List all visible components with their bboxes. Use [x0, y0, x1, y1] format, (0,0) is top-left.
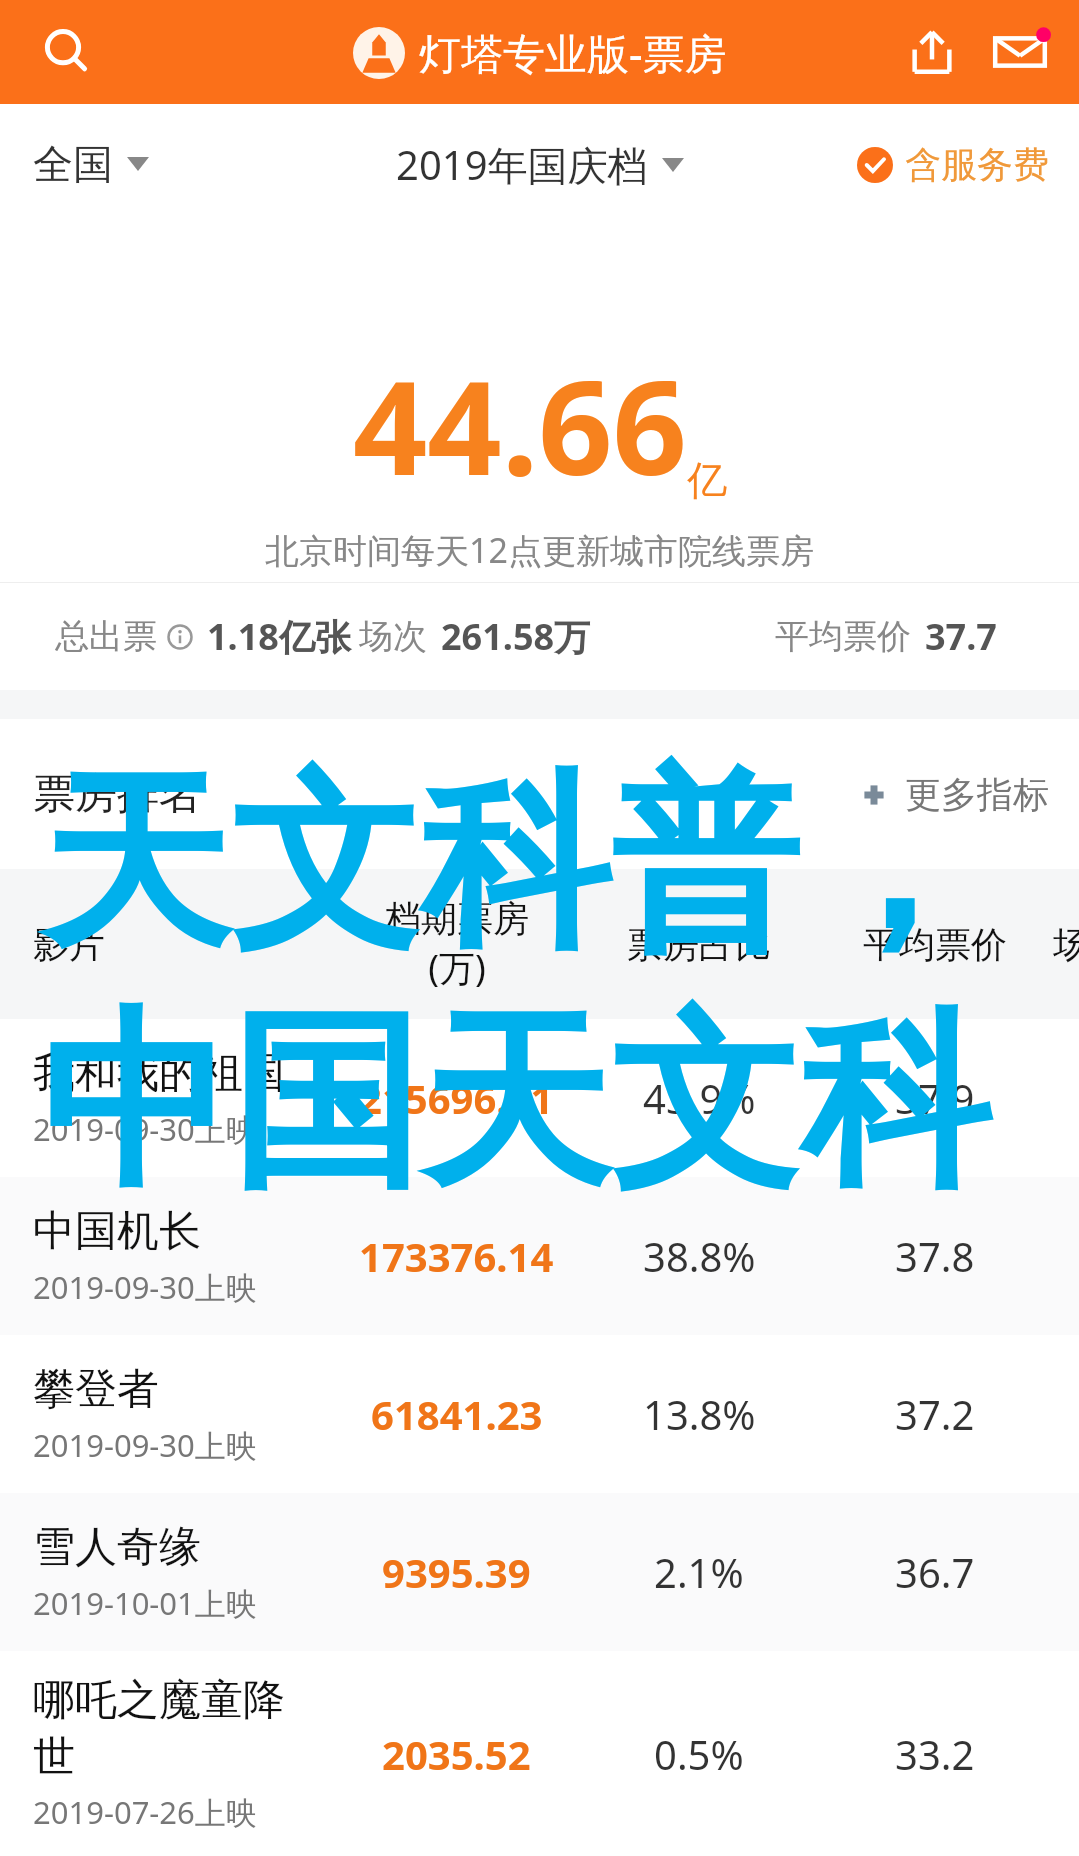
staticText: 攀登者	[33, 1363, 159, 1416]
button[interactable]: Messages	[989, 21, 1051, 83]
button[interactable]: 含服务费	[857, 142, 1049, 187]
staticText: 场	[1053, 922, 1079, 967]
staticText: 36.7	[895, 1545, 975, 1599]
staticText: 261.58万	[441, 612, 591, 661]
staticText: 北京时间每天12点更新城市院线票房	[265, 527, 814, 573]
staticText: 13.8%	[643, 1387, 756, 1441]
staticText: 全国	[33, 139, 113, 189]
staticText: 43.9%	[643, 1071, 756, 1125]
staticText: 2019-09-30上映	[33, 1424, 257, 1466]
button[interactable]: 攀登者	[0, 1335, 1079, 1493]
staticText: 雪人奇缘	[33, 1521, 201, 1574]
button[interactable]: 2019年国庆档	[396, 137, 684, 192]
staticText: 亿	[687, 455, 727, 505]
staticText: 平均票价	[863, 922, 1007, 967]
staticText: 44.66	[353, 336, 687, 513]
staticText: 2019年国庆档	[396, 137, 648, 192]
staticText: 37.7	[925, 612, 997, 661]
staticText: 2035.52	[382, 1727, 531, 1781]
button[interactable]: 雪人奇缘	[0, 1493, 1079, 1651]
staticText: 215696.21	[359, 1071, 554, 1125]
staticText: 2.1%	[654, 1545, 744, 1599]
staticText: 票房排名	[33, 768, 201, 821]
staticText: 37.8	[895, 1229, 975, 1283]
staticText: 37.9	[895, 1071, 975, 1125]
staticText: 2019-09-30上映	[33, 1266, 257, 1308]
staticText: 哪吒之魔童降 世	[33, 1674, 285, 1783]
staticText: 票房占比	[627, 922, 771, 967]
staticText: 1.18亿张	[207, 612, 351, 661]
staticText: 影片	[33, 922, 105, 967]
button[interactable]: 更多指标	[859, 772, 1049, 817]
staticText: 2019-09-30上映	[33, 1108, 257, 1150]
button[interactable]: 我和我的祖国	[0, 1019, 1079, 1177]
staticText: 38.8%	[643, 1229, 756, 1283]
staticText: 更多指标	[905, 772, 1049, 817]
staticText: 灯塔专业版-票房	[419, 24, 727, 81]
staticText: 中国天文科	[40, 984, 990, 1223]
staticText: 2019-07-26上映	[33, 1791, 257, 1833]
staticText: 平均票价	[775, 615, 911, 658]
staticText: 2019-10-01上映	[33, 1582, 257, 1624]
staticText: 0.5%	[654, 1727, 744, 1781]
staticText: 含服务费	[905, 142, 1049, 187]
button[interactable]: 中国机长	[0, 1177, 1079, 1335]
staticText: 天文科普，	[40, 745, 990, 984]
staticText: 场次	[359, 615, 427, 658]
staticText: 我和我的祖国	[33, 1047, 285, 1100]
staticText: 总出票	[55, 615, 157, 658]
staticText: 61841.23	[371, 1387, 543, 1441]
staticText: 33.2	[895, 1727, 975, 1781]
staticText: 中国机长	[33, 1205, 201, 1258]
button[interactable]: Share	[901, 21, 963, 83]
button[interactable]: 哪吒之魔童降 世	[0, 1651, 1079, 1856]
staticText: 173376.14	[359, 1229, 554, 1283]
button[interactable]: 全国	[33, 139, 149, 189]
staticText: 9395.39	[382, 1545, 531, 1599]
button[interactable]: Search	[36, 22, 96, 82]
staticText: 37.2	[895, 1387, 975, 1441]
staticText: 档期票房 (万)	[385, 896, 529, 992]
